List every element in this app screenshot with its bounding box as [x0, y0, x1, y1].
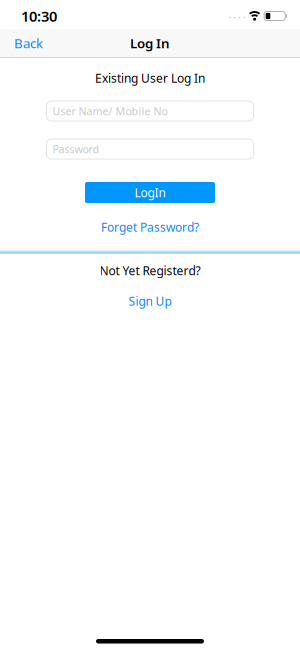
staticText: Password: [52, 142, 99, 156]
staticText: Existing User Log In: [95, 70, 205, 86]
staticText: Log In: [130, 34, 170, 52]
staticText: 10:30: [21, 6, 57, 26]
button[interactable]: Back: [14, 34, 43, 52]
staticText: Sign Up: [128, 293, 171, 309]
button[interactable]: Sign Up: [128, 296, 171, 306]
button[interactable]: Forget Password?: [101, 220, 199, 234]
staticText: Back: [14, 34, 43, 52]
button[interactable]: LogIn: [85, 182, 215, 203]
staticText: LogIn: [134, 184, 165, 200]
staticText: Forget Password?: [101, 219, 199, 235]
staticText: User Name/ Mobile No: [52, 104, 167, 118]
staticText: Not Yet Registerd?: [99, 263, 200, 279]
button[interactable]: User Name/ Mobile No: [46, 101, 253, 121]
button[interactable]: Password: [46, 139, 253, 159]
